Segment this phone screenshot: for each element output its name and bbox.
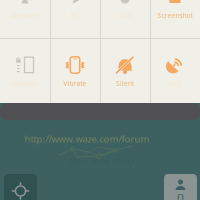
button[interactable]: Screenshot (150, 0, 200, 38)
button[interactable]: Vibrate (50, 39, 100, 103)
button[interactable]: Friends online (164, 174, 197, 200)
button[interactable]: Recenter map (4, 174, 37, 200)
staticText: http://www.waze.com/forum (24, 133, 149, 145)
staticText: Vibrate (63, 79, 86, 88)
button[interactable]: Rotation (0, 39, 50, 103)
staticText: GPS (168, 79, 181, 88)
staticText: Screenshot (157, 11, 192, 20)
staticText: 0 (177, 190, 184, 200)
button[interactable]: BT (50, 0, 100, 38)
button[interactable]: Silent (100, 39, 150, 103)
staticText: Airplane (11, 11, 38, 20)
button[interactable]: Airplane (0, 0, 50, 38)
staticText: DND (117, 11, 132, 20)
button[interactable]: GPS (150, 39, 200, 103)
staticText: קהילת נהגים חכמה (69, 156, 135, 166)
staticText: BT (71, 11, 79, 20)
staticText: Silent (116, 79, 134, 88)
staticText: Rotation (12, 79, 38, 88)
button[interactable]: DND (100, 0, 150, 38)
